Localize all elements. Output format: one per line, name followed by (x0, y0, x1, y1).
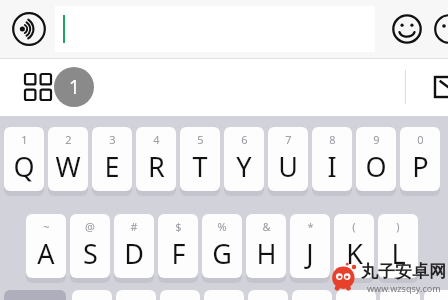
button[interactable] (116, 290, 156, 300)
staticText: G (212, 235, 232, 272)
button[interactable]: @ (70, 214, 110, 281)
button[interactable]: ) (378, 214, 418, 281)
staticText: 8 (329, 132, 336, 147)
staticText: 6 (241, 132, 248, 147)
staticText: F (171, 235, 186, 272)
staticText: D (124, 235, 144, 272)
staticText: * (307, 219, 314, 234)
button[interactable]: 1 (4, 127, 44, 194)
button[interactable] (248, 290, 288, 300)
button[interactable]: 0 (400, 127, 440, 194)
button[interactable]: 5 (180, 127, 220, 194)
staticText: R (148, 148, 165, 185)
button[interactable]: & (246, 214, 286, 281)
staticText: 5 (197, 132, 204, 147)
staticText: @ (85, 219, 95, 234)
button[interactable] (204, 290, 244, 300)
button[interactable]: Emoji (386, 8, 428, 50)
staticText: ~ (43, 219, 50, 234)
staticText: P (412, 148, 429, 185)
staticText: 7 (285, 132, 292, 147)
button[interactable]: 2 (48, 127, 88, 194)
button[interactable]: ~ (26, 214, 66, 281)
button[interactable]: ( (334, 214, 374, 281)
button[interactable]: % (202, 214, 242, 281)
staticText: 丸子安卓网 (361, 261, 446, 282)
staticText: www.wzsqsy.com (367, 282, 441, 294)
button[interactable] (336, 290, 376, 300)
staticText: L (391, 235, 406, 272)
staticText: # (130, 219, 138, 234)
staticText: ) (396, 219, 400, 234)
staticText: $ (175, 219, 182, 234)
staticText: Q (13, 148, 35, 185)
button[interactable]: Shift (4, 290, 66, 300)
staticText: Y (236, 148, 252, 185)
button[interactable]: 1 (54, 67, 94, 107)
staticText: K (346, 235, 363, 272)
button[interactable]: 9 (356, 127, 396, 194)
button[interactable] (160, 290, 200, 300)
button[interactable]: 6 (224, 127, 264, 194)
staticText: ( (352, 219, 356, 234)
staticText: & (262, 219, 271, 234)
button[interactable]: 7 (268, 127, 308, 194)
button[interactable]: * (290, 214, 330, 281)
staticText: I (327, 148, 337, 185)
button[interactable] (72, 290, 112, 300)
staticText: 2 (65, 132, 72, 147)
button[interactable]: 3 (92, 127, 132, 194)
button[interactable]: Keyboard tools (18, 67, 58, 107)
button[interactable] (55, 6, 375, 52)
button[interactable]: 4 (136, 127, 176, 194)
button[interactable] (424, 290, 448, 300)
staticText: U (278, 148, 298, 185)
button[interactable] (380, 290, 420, 300)
button[interactable]: More (428, 8, 448, 50)
staticText: 0 (417, 132, 424, 147)
staticText: A (37, 235, 55, 272)
staticText: 3 (109, 132, 116, 147)
staticText: O (365, 148, 387, 185)
button[interactable]: 8 (312, 127, 352, 194)
button[interactable]: Backspace (428, 67, 448, 107)
staticText: H (256, 235, 277, 272)
staticText: 1 (69, 74, 80, 100)
button[interactable]: # (114, 214, 154, 281)
staticText: 4 (153, 132, 160, 147)
staticText: 1 (21, 132, 28, 147)
staticText: 9 (373, 132, 380, 147)
staticText: T (192, 148, 208, 185)
staticText: S (83, 235, 98, 272)
button[interactable] (292, 290, 332, 300)
button[interactable]: Voice input (8, 8, 50, 50)
button[interactable]: $ (158, 214, 198, 281)
staticText: % (217, 219, 227, 234)
staticText: J (306, 235, 314, 272)
staticText: W (55, 148, 81, 185)
staticText: E (104, 148, 120, 185)
